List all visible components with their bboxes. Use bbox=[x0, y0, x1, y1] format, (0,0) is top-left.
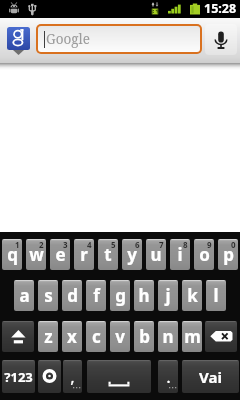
button[interactable]: . bbox=[158, 360, 178, 393]
staticText: t bbox=[104, 243, 112, 266]
staticText: q bbox=[7, 243, 18, 266]
button[interactable]: Space bbox=[87, 360, 151, 393]
button[interactable]: k bbox=[182, 280, 202, 311]
staticText: k bbox=[187, 284, 198, 307]
button[interactable]: v bbox=[110, 321, 130, 352]
staticText: o bbox=[199, 243, 210, 266]
staticText: 5 bbox=[111, 239, 116, 250]
staticText: 1 bbox=[15, 239, 20, 250]
staticText: b bbox=[139, 325, 150, 348]
button[interactable]: a bbox=[14, 280, 34, 311]
button[interactable]: l bbox=[206, 280, 226, 311]
staticText: 7 bbox=[159, 239, 164, 250]
staticText: c bbox=[92, 325, 101, 348]
staticText: 6 bbox=[135, 239, 140, 250]
button[interactable]: x bbox=[62, 321, 82, 352]
staticText: u bbox=[150, 243, 162, 266]
button[interactable]: y bbox=[122, 239, 142, 270]
button[interactable]: j bbox=[158, 280, 178, 311]
staticText: 9 bbox=[207, 239, 212, 250]
staticText: m bbox=[184, 325, 201, 348]
staticText: f bbox=[93, 284, 100, 307]
button[interactable]: Shift bbox=[2, 321, 34, 352]
staticText: y bbox=[127, 243, 137, 266]
staticText: v bbox=[115, 325, 125, 348]
button[interactable]: Google bbox=[38, 26, 200, 52]
staticText: g bbox=[115, 284, 126, 307]
button[interactable]: Voice search bbox=[205, 24, 237, 55]
button[interactable]: n bbox=[158, 321, 178, 352]
button[interactable]: s bbox=[38, 280, 58, 311]
button[interactable]: w bbox=[26, 239, 46, 270]
button[interactable]: d bbox=[62, 280, 82, 311]
staticText: Vai bbox=[199, 367, 222, 387]
staticText: Google bbox=[46, 30, 90, 48]
staticText: ?123 bbox=[4, 368, 33, 386]
staticText: e bbox=[55, 243, 66, 266]
button[interactable]: m bbox=[182, 321, 202, 352]
button[interactable]: e bbox=[50, 239, 70, 270]
button[interactable]: r bbox=[74, 239, 94, 270]
staticText: x bbox=[67, 325, 77, 348]
staticText: 3 bbox=[63, 239, 68, 250]
staticText: 2 bbox=[39, 239, 44, 250]
staticText: n bbox=[162, 325, 174, 348]
button[interactable]: q bbox=[2, 239, 22, 270]
button[interactable]: h bbox=[134, 280, 154, 311]
staticText: p bbox=[223, 243, 234, 266]
button[interactable]: p bbox=[218, 239, 238, 270]
staticText: 8 bbox=[183, 239, 188, 250]
button[interactable]: Search provider bbox=[7, 27, 30, 50]
button[interactable]: i bbox=[170, 239, 190, 270]
button[interactable]: t bbox=[98, 239, 118, 270]
button[interactable]: Backspace bbox=[205, 321, 237, 352]
staticText: , bbox=[70, 365, 75, 388]
button[interactable]: z bbox=[38, 321, 58, 352]
button[interactable]: Input options bbox=[38, 360, 61, 393]
staticText: . bbox=[166, 365, 171, 388]
staticText: 0 bbox=[231, 239, 236, 250]
staticText: d bbox=[67, 284, 78, 307]
staticText: s bbox=[44, 284, 53, 307]
staticText: j bbox=[165, 284, 171, 307]
button[interactable]: u bbox=[146, 239, 166, 270]
button[interactable]: b bbox=[134, 321, 154, 352]
staticText: 15:28 bbox=[204, 0, 237, 17]
button[interactable]: Vai bbox=[182, 360, 239, 393]
button[interactable]: g bbox=[110, 280, 130, 311]
staticText: l bbox=[213, 284, 219, 307]
staticText: z bbox=[44, 325, 53, 348]
button[interactable]: ?123 bbox=[2, 360, 35, 393]
button[interactable]: o bbox=[194, 239, 214, 270]
staticText: a bbox=[19, 284, 30, 307]
staticText: 4 bbox=[87, 239, 92, 250]
button[interactable]: f bbox=[86, 280, 106, 311]
button[interactable]: c bbox=[86, 321, 106, 352]
staticText: h bbox=[138, 284, 150, 307]
staticText: r bbox=[80, 243, 88, 266]
button[interactable]: , bbox=[63, 360, 82, 393]
staticText: i bbox=[177, 243, 183, 266]
staticText: w bbox=[29, 243, 44, 266]
